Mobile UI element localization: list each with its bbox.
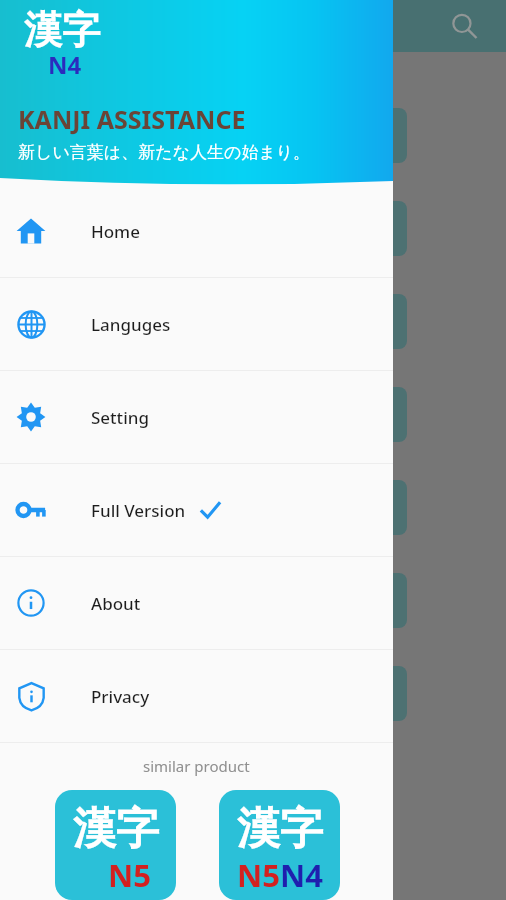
staticText: N5: [108, 854, 151, 896]
staticText: N4: [280, 854, 323, 896]
button[interactable]: Kanji N5 N4 app: [219, 790, 340, 900]
button[interactable]: Kanji N5 app: [55, 790, 176, 900]
button[interactable]: [250, 387, 407, 442]
button[interactable]: Setting: [0, 371, 393, 463]
button[interactable]: [250, 480, 407, 535]
staticText: Full Version: [91, 499, 186, 522]
button[interactable]: Home: [0, 185, 393, 277]
staticText: 新しい言葉は、新たな人生の始まり。: [18, 142, 311, 163]
button[interactable]: About: [0, 557, 393, 649]
staticText: N4: [48, 48, 82, 81]
staticText: 漢字: [73, 802, 159, 856]
button[interactable]: [250, 666, 407, 721]
staticText: 漢字: [24, 6, 100, 54]
staticText: Setting: [91, 406, 149, 429]
button[interactable]: [250, 201, 407, 256]
button[interactable]: Full Version: [0, 464, 393, 556]
button[interactable]: [250, 294, 407, 349]
staticText: Privacy: [91, 685, 150, 708]
button[interactable]: [250, 573, 407, 628]
staticText: Languges: [91, 313, 171, 336]
staticText: KANJI ASSISTANCE: [18, 102, 246, 136]
staticText: Home: [91, 220, 140, 243]
staticText: similar product: [143, 756, 250, 776]
button[interactable]: Search: [444, 6, 484, 46]
staticText: N5: [237, 854, 280, 896]
staticText: About: [91, 592, 141, 615]
button[interactable]: [250, 108, 407, 163]
button[interactable]: Languges: [0, 278, 393, 370]
staticText: 漢字: [237, 802, 323, 856]
button[interactable]: Privacy: [0, 650, 393, 742]
